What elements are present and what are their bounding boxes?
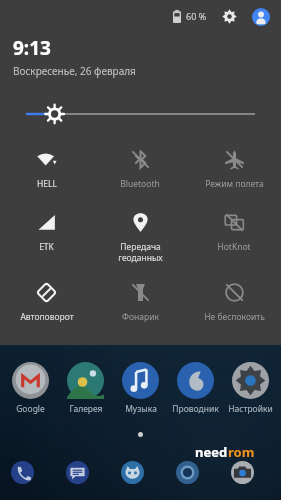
button[interactable]: Bluetooth: [93, 144, 187, 192]
button[interactable]: HELL: [0, 144, 93, 192]
staticText: 60 %: [186, 10, 207, 22]
button[interactable]: Brightness: [0, 101, 281, 127]
staticText: Передача геоданных: [118, 241, 163, 263]
button[interactable]: Галерея: [58, 362, 113, 415]
button[interactable]: Chrome: [168, 461, 223, 484]
staticText: need: [195, 443, 228, 461]
button[interactable]: Проводник: [168, 362, 223, 415]
staticText: Проводник: [172, 403, 219, 415]
staticText: Bluetooth: [120, 178, 160, 190]
staticText: Google: [16, 403, 45, 415]
staticText: HELL: [37, 178, 57, 190]
button[interactable]: CyanogenMod: [113, 461, 168, 484]
staticText: Галерея: [69, 403, 103, 415]
button[interactable]: HotKnot: [187, 207, 281, 255]
button[interactable]: Передача геоданных: [93, 207, 187, 265]
staticText: Воскресенье, 26 февраля: [13, 64, 136, 78]
button[interactable]: Музыка: [113, 362, 168, 415]
button[interactable]: Режим полета: [187, 144, 281, 192]
button[interactable]: Фонарик: [93, 277, 187, 325]
button[interactable]: Не беспокоить: [187, 277, 281, 325]
button[interactable]: Автоповорот: [0, 277, 93, 325]
staticText: HotKnot: [217, 241, 251, 253]
staticText: Автоповорот: [20, 311, 74, 323]
staticText: Фонарик: [122, 311, 159, 323]
button[interactable]: Settings: [220, 7, 239, 26]
staticText: 9:13: [13, 35, 51, 61]
button[interactable]: Google: [3, 362, 58, 415]
button[interactable]: ETK: [0, 207, 93, 255]
button[interactable]: Phone: [3, 461, 58, 484]
staticText: Настройки: [228, 403, 273, 415]
button[interactable]: Настройки: [223, 362, 278, 415]
button[interactable]: Camera: [223, 461, 278, 484]
staticText: rom: [228, 443, 255, 461]
staticText: Музыка: [125, 403, 157, 415]
staticText: Не беспокоить: [204, 311, 265, 323]
button[interactable]: Messages: [58, 461, 113, 484]
button[interactable]: User profile: [250, 6, 271, 27]
staticText: Режим полета: [205, 178, 264, 190]
staticText: ETK: [39, 241, 54, 253]
